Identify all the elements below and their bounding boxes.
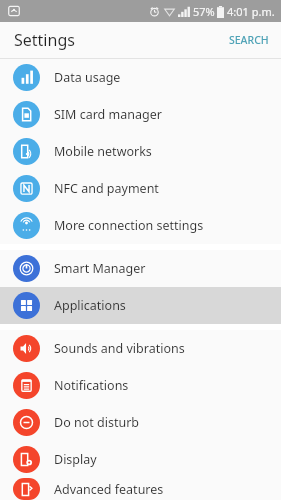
button[interactable]: Applications [0, 287, 281, 324]
staticText: Data usage [54, 69, 121, 86]
button[interactable]: Display [0, 441, 281, 478]
staticText: 4:01 p.m. [227, 4, 275, 19]
staticText: Notifications [54, 377, 129, 394]
button[interactable]: SEARCH [217, 24, 281, 56]
staticText: More connection settings [54, 217, 204, 234]
staticText: Smart Manager [54, 260, 146, 277]
button[interactable]: Notifications [0, 367, 281, 404]
staticText: SEARCH [229, 33, 269, 47]
button[interactable]: NFC and payment [0, 170, 281, 207]
staticText: Mobile networks [54, 143, 152, 160]
staticText: Display [54, 451, 97, 468]
button[interactable]: More connection settings [0, 207, 281, 244]
staticText: Settings [14, 29, 75, 51]
button[interactable]: Smart Manager [0, 250, 281, 287]
staticText: SIM card manager [54, 106, 162, 123]
button[interactable]: Advanced features [0, 478, 281, 500]
button[interactable]: SIM card manager [0, 96, 281, 133]
staticText: NFC and payment [54, 180, 159, 197]
staticText: Do not disturb [54, 414, 139, 431]
staticText: Sounds and vibrations [54, 340, 185, 357]
button[interactable]: Sounds and vibrations [0, 330, 281, 367]
button[interactable]: Do not disturb [0, 404, 281, 441]
button[interactable]: Mobile networks [0, 133, 281, 170]
button[interactable]: Data usage [0, 59, 281, 96]
other: Notification [8, 5, 20, 17]
staticText: Advanced features [54, 481, 164, 498]
staticText: 57% [193, 4, 215, 19]
staticText: Applications [54, 297, 126, 314]
